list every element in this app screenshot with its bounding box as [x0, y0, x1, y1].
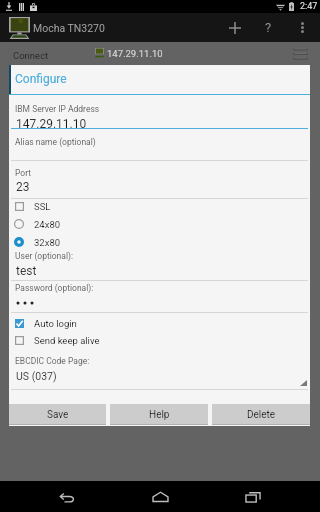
staticText: 147.29.11.10	[107, 48, 163, 59]
staticText: Delete	[247, 409, 276, 421]
button[interactable]: SSL	[9, 199, 310, 213]
staticText: US (037)	[16, 370, 57, 382]
button[interactable]: 147.29.11.10	[95, 47, 163, 59]
staticText: User (optional):	[15, 251, 74, 261]
staticText: Help	[149, 409, 170, 421]
button[interactable]: Back	[41, 481, 93, 512]
staticText: Connect	[13, 50, 49, 61]
staticText: Configure	[15, 72, 67, 86]
staticText: 147.29.11.10	[16, 117, 87, 131]
staticText: Alias name (optional)	[15, 137, 96, 147]
button[interactable]: Help	[110, 404, 208, 425]
button[interactable]: 32x80	[9, 235, 310, 249]
staticText: Auto login	[34, 318, 77, 329]
staticText: ?	[265, 20, 272, 35]
button[interactable]: Add	[219, 13, 251, 42]
staticText: 32x80	[34, 237, 61, 248]
button[interactable]: Save	[9, 404, 106, 425]
staticText: IBM Server IP Address	[15, 104, 100, 114]
button[interactable]: 24x80	[9, 217, 310, 231]
staticText: 23	[16, 180, 30, 194]
button[interactable]: Auto login	[9, 316, 310, 330]
button[interactable]: Help	[252, 13, 284, 42]
button[interactable]: Send keep alive	[9, 333, 310, 347]
button[interactable]: Home	[134, 481, 186, 512]
staticText: EBCDIC Code Page:	[15, 356, 90, 366]
staticText: Mocha TN3270	[33, 22, 105, 34]
staticText: 2:47	[300, 1, 318, 12]
button[interactable]: Connect	[13, 42, 49, 65]
staticText: 24x80	[34, 219, 61, 230]
button[interactable]: Recents	[227, 481, 279, 512]
button[interactable]: More options	[288, 13, 316, 42]
staticText: Password (optional):	[15, 283, 94, 293]
staticText: Send keep alive	[34, 335, 100, 346]
staticText: test	[16, 264, 37, 278]
button[interactable]: Delete	[212, 404, 310, 425]
button[interactable]: Menu	[287, 42, 314, 65]
staticText: SSL	[34, 201, 51, 212]
staticText: Port	[15, 168, 32, 178]
staticText: Save	[47, 409, 69, 421]
